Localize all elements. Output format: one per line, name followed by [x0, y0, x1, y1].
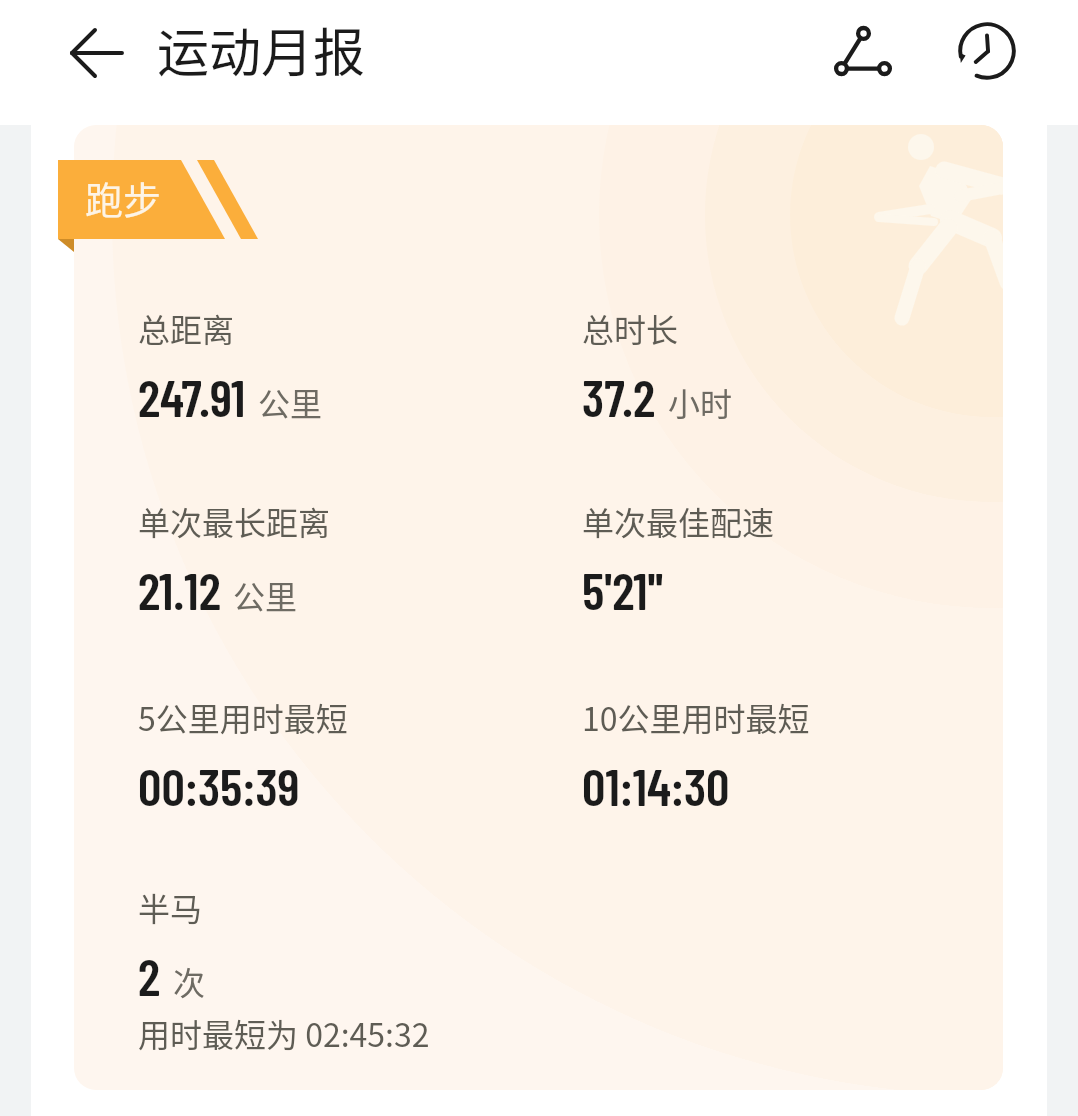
staticText: 单次最长距离 — [138, 498, 331, 544]
button[interactable]: History — [939, 3, 1035, 99]
staticText: 01:14:30 — [582, 754, 730, 816]
staticText: 5'21'' — [582, 558, 664, 620]
staticText: 37.2 — [582, 365, 656, 427]
staticText: 小时 — [668, 379, 733, 425]
staticText: 运动月报 — [157, 12, 366, 87]
button[interactable]: Share — [814, 3, 910, 99]
staticText: 247.91 — [138, 365, 246, 427]
staticText: 公里 — [258, 379, 323, 425]
staticText: 2 — [138, 944, 161, 1006]
staticText: 用时最短为 02:45:32 — [138, 1010, 430, 1056]
staticText: 跑步 — [85, 170, 162, 225]
staticText: 单次最佳配速 — [582, 498, 775, 544]
staticText: 公里 — [233, 572, 298, 618]
staticText: 5公里用时最短 — [138, 694, 348, 740]
staticText: 总距离 — [138, 305, 235, 351]
staticText: 总时长 — [582, 305, 679, 351]
button[interactable]: Back — [53, 9, 141, 97]
staticText: 21.12 — [138, 558, 221, 620]
staticText: 00:35:39 — [138, 754, 300, 816]
staticText: 半马 — [138, 884, 203, 930]
button[interactable]: 总距离 — [74, 125, 1003, 1090]
staticText: 10公里用时最短 — [582, 694, 810, 740]
staticText: 次 — [173, 958, 206, 1004]
